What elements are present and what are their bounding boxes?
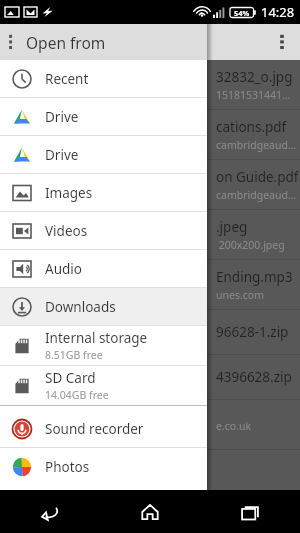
staticText: 14.04GB free xyxy=(45,388,109,402)
staticText: 14:28 xyxy=(261,3,295,21)
staticText: Downloads xyxy=(45,298,116,316)
staticText: 15181531441… xyxy=(216,88,291,102)
button[interactable]: Sound recorder xyxy=(0,410,207,447)
staticText: Internal storage xyxy=(45,329,148,347)
button[interactable]: .jpeg xyxy=(0,210,300,259)
staticText: 200x200.jpeg xyxy=(216,238,285,252)
staticText: e.co.uk xyxy=(216,419,252,433)
button[interactable]: Drive xyxy=(0,98,207,135)
button[interactable]: Drive xyxy=(0,136,207,173)
staticText: Open from xyxy=(26,32,106,53)
button[interactable]: Recents xyxy=(200,490,300,533)
staticText: Audio xyxy=(45,260,82,278)
staticText: Images xyxy=(45,184,93,202)
button[interactable]: Audio xyxy=(0,250,207,287)
staticText: 96628-1.zip xyxy=(216,323,289,341)
button[interactable]: e.co.uk xyxy=(0,400,300,449)
button[interactable]: Downloads xyxy=(0,288,207,325)
staticText: cambridgeaud… xyxy=(216,188,297,202)
staticText: unes.com xyxy=(216,288,264,302)
button[interactable]: 4396628.zip xyxy=(0,355,300,399)
button[interactable]: Ending.mp3 xyxy=(0,260,300,309)
button[interactable]: Recent xyxy=(0,60,207,97)
button[interactable]: cations.pdf xyxy=(0,110,300,159)
staticText: Sound recorder xyxy=(45,420,144,438)
staticText: Drive xyxy=(45,146,79,164)
staticText: Videos xyxy=(45,222,88,240)
button[interactable]: Internal storage xyxy=(0,326,207,365)
button[interactable]: Home xyxy=(100,490,200,533)
staticText: 4396628.zip xyxy=(216,368,292,386)
staticText: 32832_o.jpg xyxy=(216,68,293,86)
staticText: Recent xyxy=(45,70,89,88)
button[interactable]: Navigation drawer xyxy=(0,24,26,60)
button[interactable]: Back xyxy=(0,490,100,533)
staticText: 8.51GB free xyxy=(45,348,103,362)
staticText: SD Card xyxy=(45,369,96,387)
button[interactable]: Images xyxy=(0,174,207,211)
staticText: Photos xyxy=(45,458,90,476)
staticText: cations.pdf xyxy=(216,118,287,136)
button[interactable]: 96628-1.zip xyxy=(0,310,300,354)
staticText: .jpeg xyxy=(216,218,248,236)
staticText: Ending.mp3 xyxy=(216,268,293,286)
staticText: 54% xyxy=(234,8,250,18)
staticText: Drive xyxy=(45,108,79,126)
button[interactable]: 32832_o.jpg xyxy=(0,60,300,109)
button[interactable]: on Guide.pdf xyxy=(0,160,300,209)
staticText: on Guide.pdf xyxy=(216,168,299,186)
button[interactable]: More options xyxy=(268,24,296,60)
staticText: cambridgeaud… xyxy=(216,138,297,152)
button[interactable]: Videos xyxy=(0,212,207,249)
button[interactable]: SD Card xyxy=(0,366,207,405)
button[interactable]: Photos xyxy=(0,448,207,485)
